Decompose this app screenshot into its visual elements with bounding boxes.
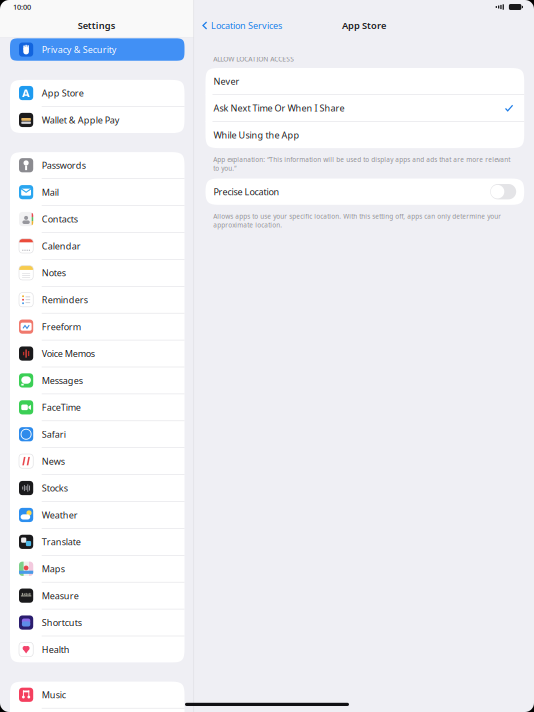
staticText: News — [42, 455, 65, 467]
button[interactable]: Location Services — [194, 14, 288, 36]
staticText: Maps — [42, 563, 65, 575]
staticText: Location Services — [211, 19, 282, 32]
button[interactable]: Contacts — [10, 206, 184, 232]
staticText: 10:00 — [13, 2, 31, 12]
staticText: Passwords — [42, 159, 86, 171]
staticText: Messages — [42, 374, 83, 387]
staticText: Settings — [78, 19, 116, 32]
button[interactable]: Messages — [10, 367, 184, 394]
button[interactable]: Reminders — [10, 287, 184, 313]
button[interactable]: Privacy & Security — [0, 38, 193, 61]
staticText: Precise Location — [213, 185, 279, 198]
staticText: Contacts — [42, 213, 78, 225]
button[interactable]: Maps — [10, 556, 184, 582]
button[interactable]: Translate — [10, 529, 184, 555]
staticText: While Using the App — [213, 129, 299, 141]
staticText: Shortcuts — [42, 616, 82, 629]
button[interactable]: News — [10, 448, 184, 474]
staticText: Weather — [42, 509, 78, 521]
staticText: Stocks — [42, 482, 68, 494]
staticText: Voice Memos — [42, 347, 95, 360]
button[interactable]: Wallet & Apple Pay — [10, 107, 184, 133]
button[interactable]: Music — [10, 682, 184, 708]
button[interactable]: Calendar — [10, 233, 184, 259]
button[interactable]: Weather — [10, 502, 184, 528]
button[interactable]: Precise Location — [205, 178, 524, 205]
button[interactable]: Freeform — [10, 313, 184, 340]
staticText: Never — [213, 75, 239, 87]
button[interactable]: While Using the App — [205, 122, 524, 148]
staticText: Safari — [42, 428, 66, 440]
staticText: Allows apps to use your specific locatio… — [213, 212, 501, 229]
staticText: App Store — [42, 87, 84, 99]
button[interactable]: Health — [10, 636, 184, 663]
staticText: Freeform — [42, 320, 81, 333]
staticText: Mail — [42, 186, 59, 198]
staticText: App explanation: “This information will … — [213, 155, 510, 172]
staticText: App Store — [342, 19, 386, 32]
staticText: Privacy & Security — [42, 43, 117, 56]
button[interactable]: Measure — [10, 582, 184, 609]
staticText: Translate — [42, 536, 81, 548]
staticText: Ask Next Time Or When I Share — [213, 102, 344, 114]
button[interactable]: Shortcuts — [10, 609, 184, 636]
button[interactable]: Passwords — [10, 152, 184, 178]
staticText: Wallet & Apple Pay — [42, 114, 120, 126]
button[interactable]: Voice Memos — [10, 340, 184, 367]
button[interactable]: A — [10, 80, 184, 106]
button[interactable]: Safari — [10, 421, 184, 447]
staticText: Measure — [42, 589, 79, 602]
staticText: Calendar — [42, 240, 81, 252]
button[interactable]: Ask Next Time Or When I Share — [205, 95, 524, 121]
button[interactable]: Mail — [10, 179, 184, 205]
staticText: Health — [42, 643, 70, 656]
button[interactable]: TV — [10, 708, 184, 712]
button[interactable]: FaceTime — [10, 394, 184, 420]
staticText: FaceTime — [42, 401, 81, 413]
staticText: ALLOW LOCATION ACCESS — [213, 54, 294, 64]
staticText: Reminders — [42, 294, 88, 306]
staticText: A — [22, 85, 30, 101]
button[interactable]: Notes — [10, 260, 184, 286]
staticText: Notes — [42, 267, 66, 279]
staticText: Music — [42, 689, 66, 701]
button[interactable]: Never — [205, 68, 524, 94]
button[interactable]: Stocks — [10, 475, 184, 501]
